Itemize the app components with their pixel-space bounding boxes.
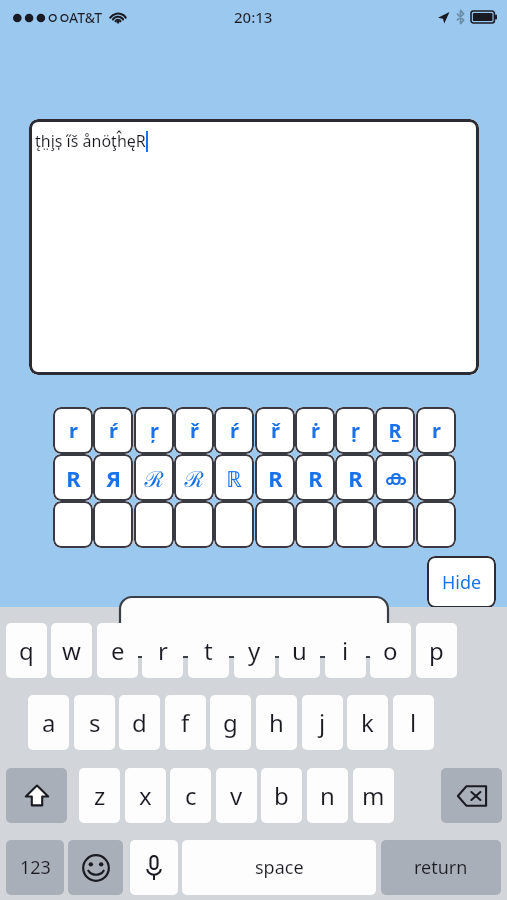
button[interactable]: e: [97, 623, 138, 678]
button[interactable]: [255, 501, 295, 548]
staticText: Ṟ: [388, 417, 402, 444]
staticText: d: [132, 706, 147, 739]
staticText: ℛ: [184, 463, 204, 493]
staticText: e: [111, 634, 125, 667]
button[interactable]: r: [142, 623, 183, 678]
staticText: ŗ: [150, 417, 159, 444]
button[interactable]: ℛ: [174, 454, 214, 501]
button[interactable]: m: [353, 768, 394, 823]
button[interactable]: x: [125, 768, 166, 823]
button[interactable]: u: [279, 623, 320, 678]
button[interactable]: Key: [182, 840, 376, 895]
staticText: AT&T: [69, 8, 103, 27]
button[interactable]: Ṟ: [375, 407, 415, 454]
button[interactable]: [416, 454, 456, 501]
staticText: o: [383, 634, 398, 667]
button[interactable]: ṛ: [335, 407, 375, 454]
button[interactable]: o: [370, 623, 411, 678]
button[interactable]: R: [295, 454, 335, 501]
button[interactable]: Key: [68, 840, 123, 895]
button[interactable]: Я: [93, 454, 133, 501]
button[interactable]: z: [79, 768, 120, 823]
staticText: Я: [106, 463, 121, 493]
button[interactable]: R: [255, 454, 295, 501]
button[interactable]: [214, 501, 254, 548]
button[interactable]: [375, 501, 415, 548]
button[interactable]: ŕ: [93, 407, 133, 454]
button[interactable]: f: [165, 695, 206, 750]
staticText: f: [181, 706, 190, 739]
staticText: r: [158, 634, 168, 667]
button[interactable]: [295, 501, 335, 548]
button[interactable]: a: [28, 695, 69, 750]
button[interactable]: ℛ: [134, 454, 174, 501]
button[interactable]: r: [416, 407, 456, 454]
button[interactable]: ř: [255, 407, 295, 454]
button[interactable]: ř: [174, 407, 214, 454]
staticText: return: [414, 855, 468, 880]
button[interactable]: Hide: [427, 556, 496, 608]
button[interactable]: Key: [6, 768, 67, 823]
button[interactable]: g: [210, 695, 251, 750]
button[interactable]: [53, 501, 93, 548]
button[interactable]: Key: [6, 840, 64, 895]
button[interactable]: q: [6, 623, 47, 678]
button[interactable]: s: [74, 695, 115, 750]
button[interactable]: [335, 501, 375, 548]
button[interactable]: k: [347, 695, 388, 750]
staticText: u: [292, 634, 307, 667]
staticText: g: [223, 706, 238, 739]
button[interactable]: d: [119, 695, 160, 750]
button[interactable]: R: [335, 454, 375, 501]
staticText: R: [308, 463, 323, 493]
button[interactable]: y: [234, 623, 275, 678]
button[interactable]: ŗ: [134, 407, 174, 454]
staticText: ℛ: [144, 463, 164, 493]
button[interactable]: R: [53, 454, 93, 501]
button[interactable]: [416, 501, 456, 548]
staticText: l: [410, 706, 417, 739]
staticText: k: [361, 706, 374, 739]
staticText: space: [255, 855, 304, 880]
staticText: ř: [271, 417, 280, 444]
staticText: t: [204, 634, 213, 667]
staticText: 20:13: [234, 7, 273, 27]
staticText: r: [69, 417, 78, 444]
staticText: t̨h̤i̧s̩ i̋š ånöţĥęR: [35, 130, 146, 152]
button[interactable]: h: [256, 695, 297, 750]
button[interactable]: [93, 501, 133, 548]
button[interactable]: l: [393, 695, 434, 750]
staticText: w: [62, 634, 81, 667]
button[interactable]: ṙ: [295, 407, 335, 454]
button[interactable]: n: [307, 768, 348, 823]
button[interactable]: c: [170, 768, 211, 823]
staticText: v: [230, 779, 243, 812]
button[interactable]: t: [188, 623, 229, 678]
button[interactable]: j: [302, 695, 343, 750]
staticText: m: [362, 779, 385, 812]
button[interactable]: Key: [381, 840, 501, 895]
button[interactable]: ℝ: [214, 454, 254, 501]
staticText: b: [274, 779, 289, 812]
button[interactable]: ŕ: [214, 407, 254, 454]
staticText: Hide: [442, 570, 482, 595]
button[interactable]: v: [216, 768, 257, 823]
button[interactable]: w: [51, 623, 92, 678]
staticText: ŕ: [109, 417, 118, 444]
button[interactable]: ക: [375, 454, 415, 501]
button[interactable]: t̨h̤i̧s̩ i̋š ånöţĥęR: [29, 119, 479, 375]
staticText: s: [89, 706, 101, 739]
button[interactable]: i: [325, 623, 366, 678]
button[interactable]: [134, 501, 174, 548]
staticText: n: [320, 779, 335, 812]
staticText: r: [432, 417, 441, 444]
staticText: x: [139, 779, 152, 812]
button[interactable]: r: [53, 407, 93, 454]
button[interactable]: [174, 501, 214, 548]
button[interactable]: p: [416, 623, 457, 678]
staticText: q: [19, 634, 34, 667]
button[interactable]: Key: [441, 768, 502, 823]
button[interactable]: b: [261, 768, 302, 823]
staticText: ക: [385, 467, 406, 489]
button[interactable]: Key: [130, 840, 178, 895]
